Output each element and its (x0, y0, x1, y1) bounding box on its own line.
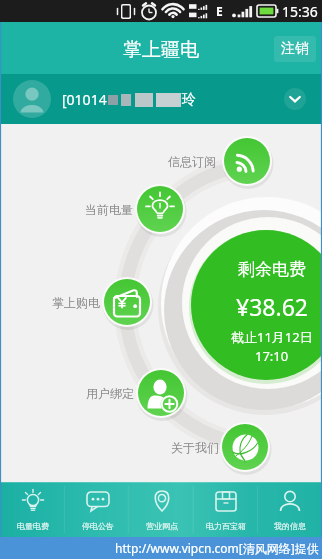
staticText: 营业网点 (146, 521, 178, 531)
staticText: 我的信息 (274, 521, 306, 531)
staticText: 电量电费 (17, 521, 49, 531)
button[interactable]: Switch account (284, 88, 306, 110)
button[interactable]: 电力百宝箱 (194, 482, 258, 537)
staticText: ¥38.62 (236, 291, 308, 322)
staticText: 当前电量 (85, 202, 133, 217)
button[interactable]: 剩余电费 (212, 248, 322, 368)
button[interactable]: 我的信息 (258, 482, 322, 537)
button[interactable]: 电量电费 (0, 482, 65, 537)
staticText: 17:10 (255, 347, 289, 365)
staticText: 玲 (182, 91, 196, 109)
staticText: 剩余电费 (238, 259, 306, 280)
staticText: 关于我们 (171, 440, 219, 455)
staticText: 停电公告 (82, 521, 114, 531)
button[interactable]: [01014 (0, 74, 322, 124)
staticText: 注销 (281, 40, 309, 58)
staticText: 掌上购电 (52, 295, 100, 310)
button[interactable]: 注销 (274, 36, 316, 62)
button[interactable]: 关于我们 (163, 436, 219, 458)
staticText: E (216, 3, 223, 19)
staticText: 信息订阅 (168, 154, 216, 169)
staticText: 用户绑定 (86, 386, 134, 401)
button[interactable]: 当前电量 (77, 198, 133, 220)
staticText: http://www.vipcn.com[清风网络]提供 (115, 540, 319, 556)
button[interactable]: 营业网点 (130, 482, 194, 537)
button[interactable]: 用户绑定 (78, 382, 134, 404)
button[interactable]: 停电公告 (65, 482, 130, 537)
staticText: 15:36 (282, 2, 318, 21)
button[interactable]: 信息订阅 (160, 150, 216, 172)
staticText: 电力百宝箱 (206, 521, 246, 531)
staticText: [01014 (62, 90, 107, 109)
staticText: 截止11月12日 (231, 328, 313, 346)
button[interactable]: 掌上购电 (44, 291, 100, 313)
staticText: 掌上疆电 (123, 38, 199, 62)
